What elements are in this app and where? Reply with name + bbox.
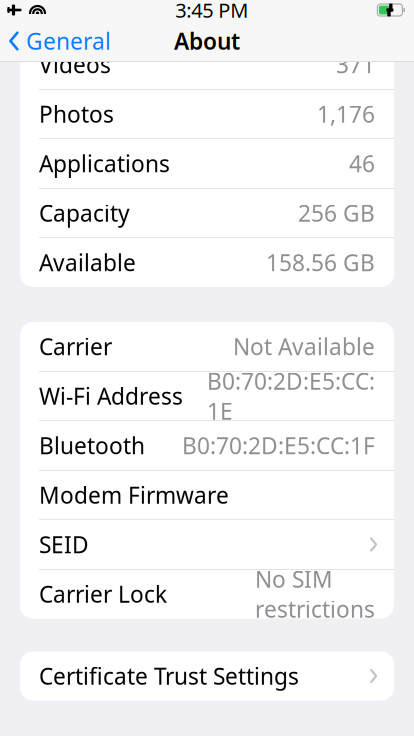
staticText: B0:70:2D:E5:CC:1E bbox=[207, 366, 375, 426]
staticText: Available bbox=[39, 247, 136, 277]
button[interactable]: SEID bbox=[20, 520, 394, 569]
button[interactable]: Modem Firmware bbox=[20, 470, 394, 519]
staticText: General bbox=[26, 26, 111, 56]
button[interactable]: Capacity bbox=[20, 188, 394, 237]
staticText: 158.56 GB bbox=[266, 247, 375, 277]
staticText: Carrier bbox=[39, 331, 112, 361]
staticText: Not Available bbox=[233, 331, 375, 361]
staticText: Photos bbox=[39, 99, 114, 129]
button[interactable]: Videos bbox=[20, 40, 394, 89]
staticText: Capacity bbox=[39, 198, 130, 228]
button[interactable]: Wi-Fi Address bbox=[20, 371, 394, 420]
button[interactable]: Applications bbox=[20, 139, 394, 188]
staticText: 1,176 bbox=[317, 99, 375, 129]
staticText: Carrier Lock bbox=[39, 579, 167, 609]
button[interactable]: Available bbox=[20, 238, 394, 287]
staticText: B0:70:2D:E5:CC:1F bbox=[182, 430, 375, 460]
staticText: No SIM restrictions bbox=[255, 564, 375, 624]
staticText: Certificate Trust Settings bbox=[39, 661, 299, 691]
button[interactable]: Carrier bbox=[20, 322, 394, 371]
button[interactable]: General bbox=[0, 20, 121, 62]
button[interactable]: Bluetooth bbox=[20, 421, 394, 470]
staticText: Bluetooth bbox=[39, 430, 145, 460]
staticText: Wi-Fi Address bbox=[39, 381, 183, 411]
staticText: SEID bbox=[39, 529, 89, 559]
staticText: About bbox=[174, 26, 240, 56]
staticText: 3:45 PM bbox=[175, 0, 248, 23]
staticText: 256 GB bbox=[298, 198, 375, 228]
staticText: 371 bbox=[336, 49, 375, 79]
staticText: Videos bbox=[39, 49, 111, 79]
button[interactable]: Certificate Trust Settings bbox=[20, 651, 394, 700]
button[interactable]: Carrier Lock bbox=[20, 569, 394, 618]
staticText: Applications bbox=[39, 148, 170, 178]
staticText: 46 bbox=[349, 148, 375, 178]
button[interactable]: Photos bbox=[20, 89, 394, 138]
staticText: Modem Firmware bbox=[39, 480, 229, 510]
